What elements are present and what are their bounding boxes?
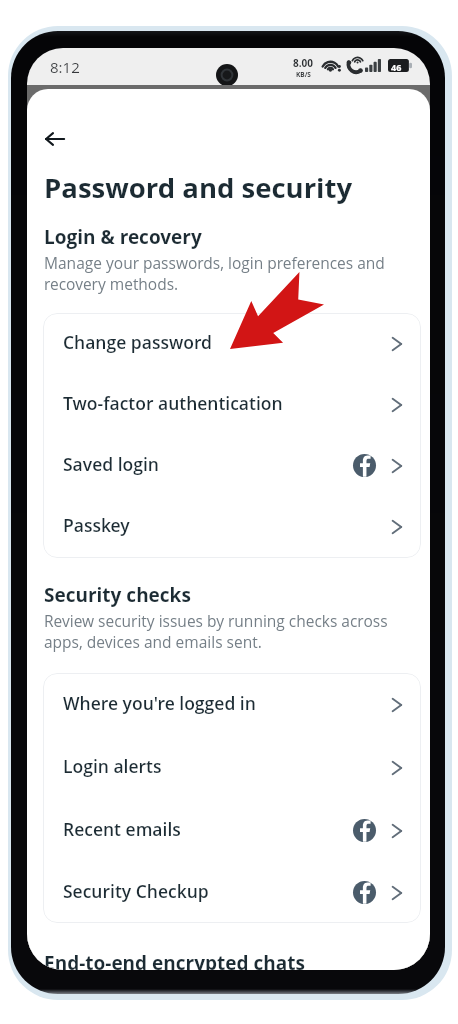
button[interactable]: Passkey	[43, 496, 421, 557]
button[interactable]: Change password	[43, 313, 421, 374]
staticText: 8:12	[50, 57, 80, 77]
staticText: Where you're logged in	[63, 691, 256, 715]
staticText: 8.00	[293, 56, 313, 70]
other: Open	[390, 335, 402, 353]
staticText: Two-factor authentication	[63, 391, 283, 415]
other: Open	[390, 759, 402, 777]
staticText: Manage your passwords, login preferences…	[44, 252, 385, 294]
staticText: Login alerts	[63, 754, 162, 778]
staticText: 46	[391, 61, 402, 73]
staticText: Security checks	[44, 582, 191, 608]
button[interactable]: Where you're logged in	[43, 673, 421, 736]
staticText: Recent emails	[63, 817, 181, 841]
other: Open	[390, 696, 402, 714]
staticText: Review security issues by running checks…	[44, 610, 388, 652]
staticText: Saved login	[63, 452, 159, 476]
button[interactable]: Login alerts	[43, 736, 421, 799]
staticText: Passkey	[63, 513, 130, 537]
staticText: Change password	[63, 330, 212, 354]
other: Open	[390, 396, 402, 414]
staticText: Login & recovery	[44, 224, 202, 250]
staticText: KB/S	[296, 70, 311, 79]
other: Open	[390, 822, 402, 840]
other: Open	[390, 884, 402, 902]
button[interactable]: Security Checkup	[43, 862, 421, 923]
staticText: Password and security	[44, 169, 353, 206]
button[interactable]: Back	[32, 116, 78, 162]
other: Open	[390, 518, 402, 536]
button[interactable]: Saved login	[43, 435, 421, 496]
button[interactable]: Two-factor authentication	[43, 374, 421, 435]
button[interactable]: Recent emails	[43, 799, 421, 862]
other: Open	[390, 457, 402, 475]
staticText: End-to-end encrypted chats	[44, 950, 305, 970]
staticText: Security Checkup	[63, 879, 209, 903]
